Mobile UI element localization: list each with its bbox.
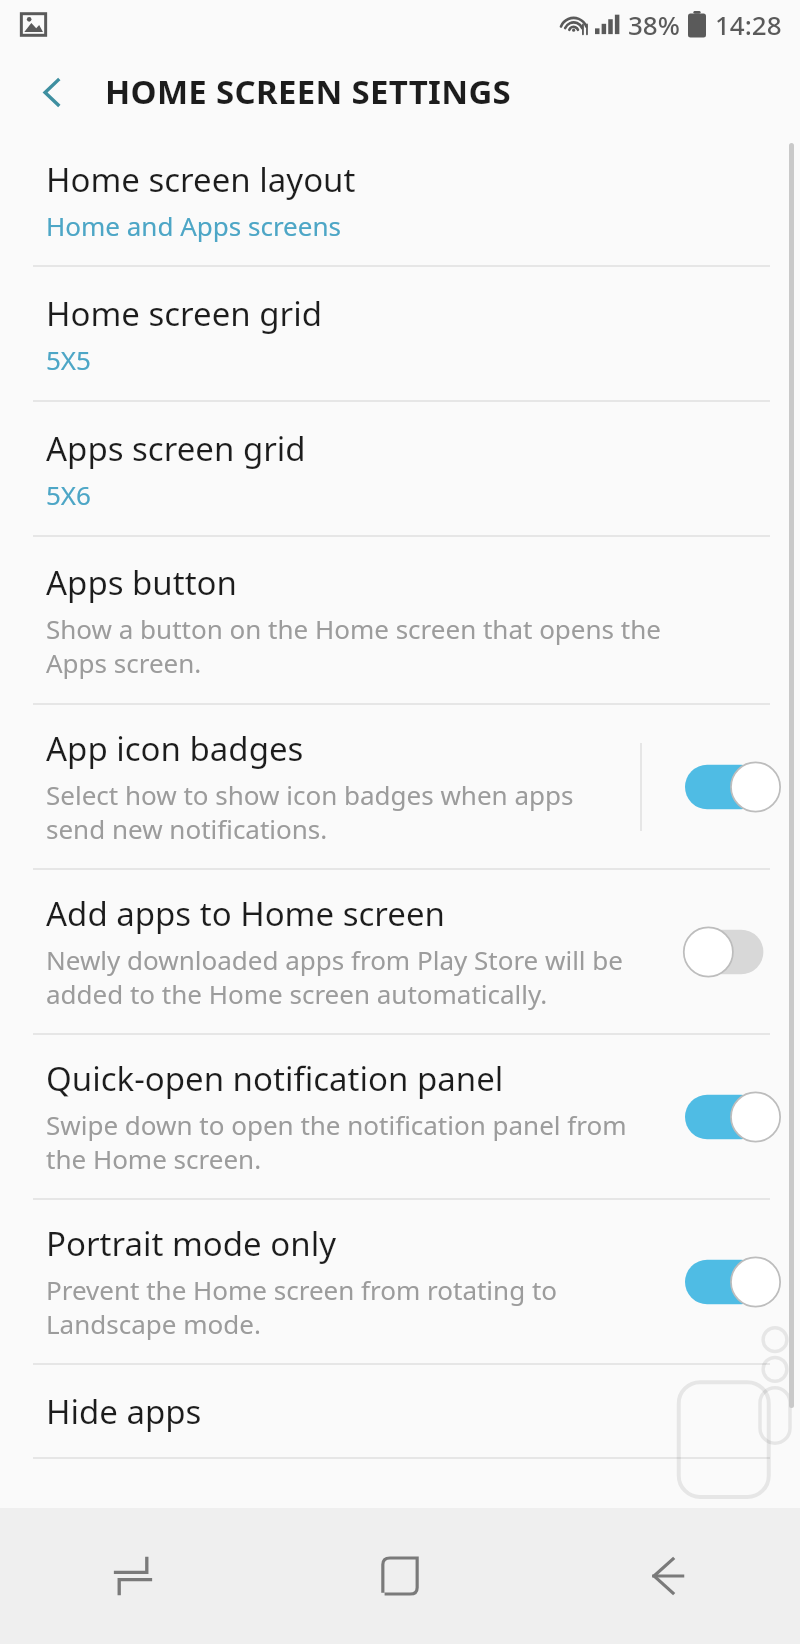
- button[interactable]: Switch on: [685, 1090, 783, 1144]
- button[interactable]: Apps button: [0, 537, 800, 703]
- button[interactable]: Home screen layout: [0, 135, 800, 265]
- button[interactable]: Portrait mode only: [0, 1200, 800, 1363]
- staticText: 5X5: [46, 342, 91, 377]
- staticText: 14:28: [715, 7, 782, 42]
- button[interactable]: Navigate up: [24, 64, 80, 120]
- button[interactable]: Home: [266, 1508, 533, 1644]
- staticText: 38%: [628, 7, 680, 42]
- staticText: Apps screen grid: [46, 426, 306, 471]
- button[interactable]: Add apps to Home screen: [0, 870, 800, 1033]
- staticText: App icon badges: [46, 726, 304, 771]
- staticText: Select how to show icon badges when apps…: [46, 777, 574, 847]
- staticText: Show a button on the Home screen that op…: [46, 611, 661, 681]
- button[interactable]: Back: [533, 1508, 800, 1644]
- staticText: Quick-open notification panel: [46, 1056, 504, 1101]
- button[interactable]: App icon badges: [0, 705, 800, 868]
- button[interactable]: Apps screen grid: [0, 402, 800, 535]
- staticText: HOME SCREEN SETTINGS: [105, 69, 512, 114]
- staticText: Add apps to Home screen: [46, 891, 445, 936]
- button[interactable]: Switch off: [685, 925, 783, 979]
- button[interactable]: Switch on: [685, 760, 783, 814]
- staticText: Home screen grid: [46, 291, 323, 336]
- button[interactable]: Home screen grid: [0, 267, 800, 400]
- staticText: 5X6: [46, 477, 91, 512]
- staticText: Newly downloaded apps from Play Store wi…: [46, 942, 623, 1012]
- staticText: Prevent the Home screen from rotating to…: [46, 1272, 558, 1342]
- staticText: Hide apps: [46, 1389, 202, 1434]
- staticText: Swipe down to open the notification pane…: [46, 1107, 627, 1177]
- staticText: Apps button: [46, 560, 237, 605]
- button[interactable]: Quick-open notification panel: [0, 1035, 800, 1198]
- button[interactable]: Hide apps: [0, 1365, 800, 1457]
- button[interactable]: Recent apps: [0, 1508, 266, 1644]
- button[interactable]: Switch on: [685, 1255, 783, 1309]
- staticText: Home and Apps screens: [46, 208, 341, 243]
- staticText: Home screen layout: [46, 157, 356, 202]
- staticText: Portrait mode only: [46, 1221, 336, 1266]
